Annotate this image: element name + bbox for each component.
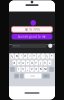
button[interactable]: r — [24, 54, 27, 59]
staticText: Z — [18, 68, 20, 71]
staticText: 123 — [15, 75, 18, 77]
staticText: G — [31, 61, 33, 64]
staticText: U — [38, 54, 40, 58]
staticText: D — [22, 61, 24, 64]
staticText: Sounds good to me — [18, 35, 46, 38]
staticText: Tap to retry — [24, 28, 39, 31]
button[interactable]: z — [17, 67, 21, 72]
staticText: P — [51, 54, 53, 58]
button[interactable]: m — [43, 67, 47, 72]
button[interactable]: y — [32, 54, 36, 59]
staticText: C — [27, 68, 29, 71]
button[interactable]: b — [35, 67, 38, 72]
staticText: I — [42, 54, 43, 58]
button[interactable]: 123 — [14, 73, 19, 78]
button[interactable]: u — [37, 54, 40, 59]
staticText: J — [40, 61, 41, 64]
staticText: O — [46, 54, 48, 58]
button[interactable]: k — [43, 60, 47, 65]
button[interactable]: h — [35, 60, 38, 65]
staticText: iMessage — [13, 45, 20, 47]
button[interactable]: v — [30, 67, 34, 72]
staticText: R — [24, 54, 26, 58]
button[interactable]: f — [26, 60, 29, 65]
button[interactable]: Send — [48, 44, 52, 48]
staticText: Q — [11, 54, 13, 58]
staticText: W — [16, 54, 18, 58]
staticText: F — [27, 61, 28, 64]
button[interactable]: Message field — [12, 44, 47, 48]
button[interactable]: g — [30, 60, 34, 65]
staticText: return — [43, 75, 48, 77]
button[interactable]: a — [13, 60, 16, 65]
button[interactable]: q — [10, 54, 14, 59]
staticText: space — [30, 75, 35, 77]
staticText: K — [44, 61, 46, 64]
button[interactable]: p — [50, 54, 53, 59]
button[interactable]: l — [48, 60, 51, 65]
button[interactable]: Modifier — [20, 73, 23, 78]
button[interactable]: Contact — [9, 0, 55, 11]
button[interactable]: s — [17, 60, 20, 65]
button[interactable]: t — [28, 54, 32, 59]
staticText: E — [20, 54, 21, 58]
staticText: S — [18, 61, 19, 64]
staticText: L — [49, 61, 50, 64]
staticText: H — [35, 61, 37, 64]
button[interactable]: x — [21, 67, 25, 72]
button[interactable]: o — [46, 54, 49, 59]
button[interactable]: Modifier — [10, 67, 15, 72]
staticText: M — [44, 68, 46, 71]
button[interactable]: return — [42, 73, 50, 78]
staticText: T — [29, 54, 30, 58]
button[interactable]: n — [39, 67, 42, 72]
staticText: A — [13, 61, 15, 64]
staticText: Y — [33, 54, 35, 58]
button[interactable]: d — [21, 60, 25, 65]
button[interactable]: Modifier — [49, 67, 54, 72]
button[interactable]: j — [39, 60, 42, 65]
staticText: N — [40, 68, 42, 71]
button[interactable]: space — [24, 73, 41, 78]
staticText: V — [31, 68, 33, 71]
button[interactable]: e — [19, 54, 23, 59]
button[interactable]: c — [26, 67, 29, 72]
staticText: B — [35, 68, 37, 71]
button[interactable]: w — [15, 54, 18, 59]
button[interactable]: i — [41, 54, 45, 59]
staticText: X — [22, 68, 24, 71]
